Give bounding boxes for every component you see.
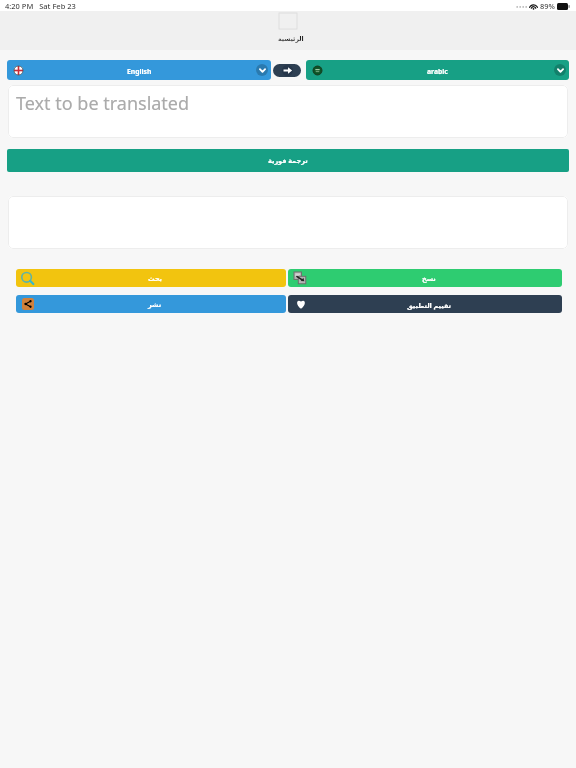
button[interactable]: Text to be translated bbox=[8, 85, 568, 138]
staticText: نسخ bbox=[422, 275, 436, 283]
button[interactable]: Home tab bbox=[275, 13, 301, 42]
staticText: 89% bbox=[540, 1, 555, 11]
button[interactable]: arabic bbox=[306, 60, 569, 80]
button[interactable]: ترجمة فورية bbox=[7, 149, 569, 172]
staticText: ترجمة فورية bbox=[268, 156, 308, 165]
button[interactable]: نشر bbox=[16, 295, 286, 313]
staticText: بحث bbox=[148, 275, 163, 283]
staticText: تقييم التطبيق bbox=[407, 301, 452, 310]
button[interactable]: تقييم التطبيق bbox=[288, 295, 562, 313]
staticText: arabic bbox=[427, 67, 448, 76]
staticText: English bbox=[127, 67, 152, 76]
button[interactable]: نسخ bbox=[288, 269, 562, 287]
button[interactable]: English bbox=[7, 60, 271, 80]
staticText: نشر bbox=[148, 301, 162, 309]
button[interactable] bbox=[8, 196, 568, 249]
staticText: Text to be translated bbox=[16, 91, 190, 116]
button[interactable]: بحث bbox=[16, 269, 286, 287]
staticText: الرئيسية bbox=[278, 35, 304, 42]
staticText: 4:20 PM Sat Feb 23 bbox=[5, 1, 76, 11]
button[interactable]: Swap languages bbox=[273, 64, 301, 77]
